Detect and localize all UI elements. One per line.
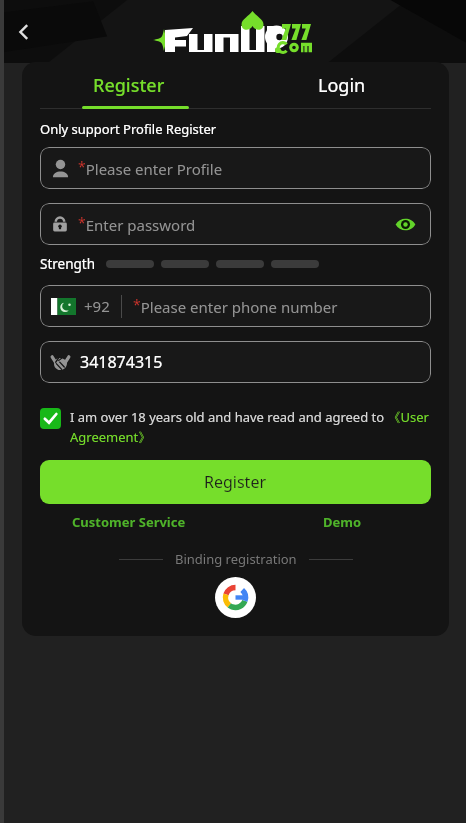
button[interactable]: Sign in with Google xyxy=(215,577,256,618)
button[interactable]: Back xyxy=(6,14,42,50)
button[interactable]: Demo xyxy=(235,513,449,531)
staticText: I am over 18 years old and have read and… xyxy=(70,408,431,446)
staticText: *Enter password xyxy=(78,213,196,235)
staticText: Strength xyxy=(40,255,96,273)
button[interactable]: Customer Service xyxy=(22,513,235,531)
staticText: Only support Profile Register xyxy=(40,120,217,138)
staticText: Login xyxy=(318,73,366,98)
staticText: Register xyxy=(93,73,165,98)
button[interactable]: Show password xyxy=(392,211,418,237)
button[interactable]: Register xyxy=(22,70,235,98)
staticText: 341874315 xyxy=(80,351,163,373)
staticText: Binding registration xyxy=(175,550,297,568)
button[interactable]: *Please enter Profile xyxy=(40,147,431,189)
button[interactable]: 341874315 xyxy=(40,341,431,383)
staticText: Register xyxy=(204,471,267,493)
button[interactable]: Login xyxy=(235,70,449,98)
staticText: *Please enter phone number xyxy=(133,295,338,317)
staticText: *Please enter Profile xyxy=(78,157,223,179)
button[interactable]: I am over 18 xyxy=(40,408,61,429)
button[interactable]: Register xyxy=(40,460,431,504)
button[interactable]: *Enter password xyxy=(40,203,431,245)
staticText: +92 xyxy=(84,296,110,316)
staticText: Demo xyxy=(323,513,362,531)
button[interactable]: +92 xyxy=(40,285,431,327)
staticText: Customer Service xyxy=(72,513,186,531)
